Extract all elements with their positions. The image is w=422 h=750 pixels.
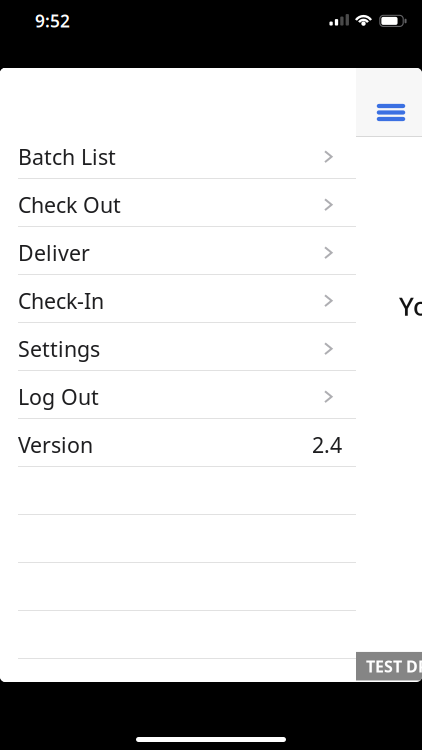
staticText: TEST DR <box>366 656 422 677</box>
staticText: Batch List <box>18 143 116 171</box>
staticText: Check-In <box>18 287 104 315</box>
staticText: Deliver <box>18 239 90 267</box>
button[interactable]: Batch List <box>0 131 356 179</box>
button[interactable]: Check Out <box>0 179 356 227</box>
staticText: Check Out <box>18 191 121 219</box>
button[interactable]: Settings <box>0 323 356 371</box>
staticText: 9:52 <box>35 9 70 32</box>
staticText: Settings <box>18 335 100 363</box>
staticText: Version <box>18 431 93 459</box>
staticText: Log Out <box>18 383 99 411</box>
button[interactable]: Check-In <box>0 275 356 323</box>
button[interactable]: Deliver <box>0 227 356 275</box>
button[interactable]: Log Out <box>0 371 356 419</box>
staticText: 2.4 <box>312 431 342 459</box>
staticText: You <box>399 289 422 323</box>
button[interactable]: Menu <box>369 96 413 129</box>
